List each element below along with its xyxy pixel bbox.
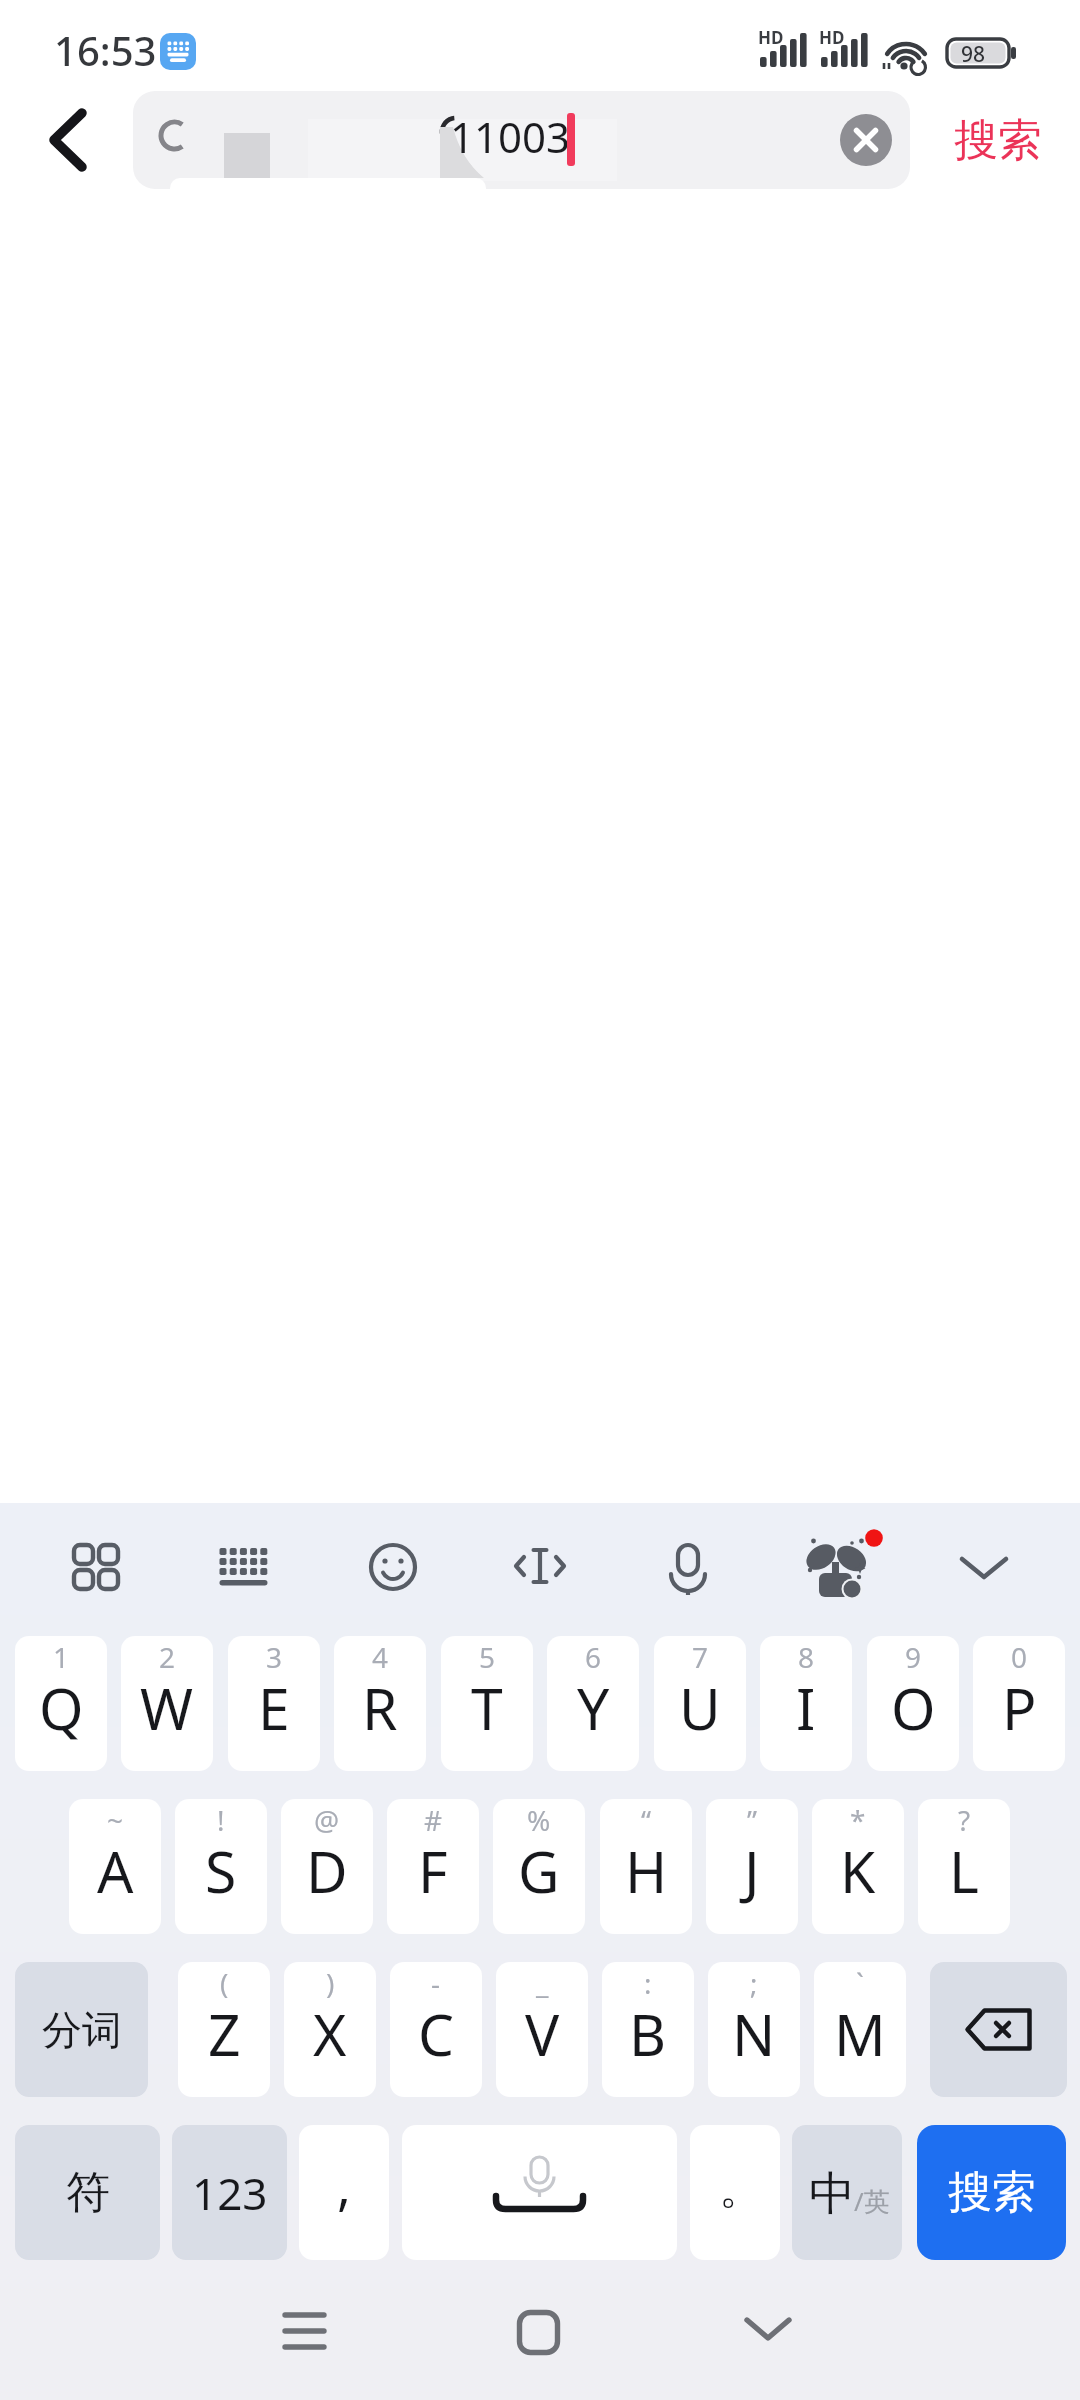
button[interactable] [930,1962,1067,2097]
staticText: O [891,1669,936,1747]
staticText: M [834,1995,886,2073]
staticText: K [840,1832,876,1910]
staticText: P [1002,1669,1037,1747]
button[interactable]: “ [600,1799,692,1934]
staticText: 8 [798,1638,815,1676]
staticText: 123 [192,2163,268,2223]
staticText: F [418,1832,448,1910]
staticText: D [306,1832,348,1910]
button[interactable]: ( [178,1962,270,2097]
button[interactable]: ! [175,1799,267,1934]
staticText: Y [577,1669,610,1747]
button[interactable]: 2 [121,1636,213,1771]
staticText: 11003 [450,108,571,165]
staticText: 中 [809,2165,855,2223]
button[interactable]: % [493,1799,585,1934]
button[interactable]: # [387,1799,479,1934]
button[interactable]: ) [284,1962,376,2097]
staticText: ; [750,1964,758,2002]
button[interactable]: 11003 [133,91,910,189]
staticText: ! [217,1801,225,1839]
button[interactable]: 。 [690,2125,780,2260]
button[interactable]: * [812,1799,904,1934]
button[interactable]: _ [496,1962,588,2097]
button[interactable]: 搜索 [938,100,1058,180]
button[interactable]: 7 [654,1636,746,1771]
staticText: 搜索 [954,113,1042,168]
button[interactable]: 1 [15,1636,107,1771]
staticText: ” [747,1801,758,1839]
staticText: 16:53 [54,23,157,77]
staticText: W [140,1669,194,1747]
button[interactable] [517,2310,563,2356]
button[interactable]: 5 [441,1636,533,1771]
staticText: /英 [854,2183,890,2219]
button[interactable] [958,1543,1010,1591]
staticText: : [644,1964,652,2002]
button[interactable]: 分词 [15,1962,148,2097]
staticText: G [518,1832,560,1910]
staticText: ` [856,1964,864,2002]
button[interactable]: 6 [547,1636,639,1771]
staticText: ) [326,1964,335,2002]
button[interactable] [514,1543,566,1591]
button[interactable]: ; [708,1962,800,2097]
staticText: ~ [107,1801,124,1839]
staticText: V [525,1995,560,2073]
button[interactable] [840,114,892,166]
button[interactable] [36,105,96,175]
staticText: 分词 [42,2005,122,2055]
staticText: 9 [905,1638,922,1676]
button[interactable]: 0 [973,1636,1065,1771]
staticText: 。 [719,2161,763,2216]
button[interactable]: 9 [867,1636,959,1771]
staticText: E [258,1669,290,1747]
staticText: 98 [961,40,986,69]
staticText: 5 [479,1638,496,1676]
staticText: HD [819,26,845,49]
button[interactable]: 搜索 [917,2125,1066,2260]
button[interactable] [744,2310,796,2352]
button[interactable]: ~ [69,1799,161,1934]
staticText: ( [220,1964,229,2002]
button[interactable] [402,2125,677,2260]
button[interactable]: 8 [760,1636,852,1771]
button[interactable]: - [390,1962,482,2097]
staticText: % [527,1801,551,1839]
staticText: Z [208,1995,241,2073]
button[interactable]: , [299,2125,389,2260]
staticText: X [313,1995,347,2073]
button[interactable] [72,1543,120,1591]
button[interactable]: : [602,1962,694,2097]
button[interactable] [664,1543,712,1595]
button[interactable] [218,1543,270,1591]
staticText: @ [314,1801,340,1839]
button[interactable] [283,2310,331,2356]
staticText: U [679,1669,721,1747]
staticText: N [732,1995,776,2073]
button[interactable]: ? [918,1799,1010,1934]
button[interactable]: 符 [15,2125,160,2260]
button[interactable]: 123 [172,2125,287,2260]
staticText: T [471,1669,503,1747]
staticText: C [418,1995,455,2073]
staticText: H [625,1832,668,1910]
button[interactable]: 3 [228,1636,320,1771]
button[interactable]: 中 [792,2125,902,2260]
staticText: J [744,1832,760,1910]
button[interactable]: ” [706,1799,798,1934]
staticText: S [205,1832,237,1910]
button[interactable]: @ [281,1799,373,1934]
staticText: 搜索 [948,2165,1036,2220]
button[interactable] [800,1530,885,1602]
staticText: “ [641,1801,652,1839]
staticText: 符 [66,2165,110,2220]
button[interactable] [368,1543,418,1593]
button[interactable]: ` [814,1962,906,2097]
staticText: , [337,2149,351,2220]
staticText: Q [39,1669,84,1747]
staticText: L [949,1832,979,1910]
button[interactable]: 4 [334,1636,426,1771]
staticText: 3 [266,1638,283,1676]
staticText: 7 [692,1638,709,1676]
